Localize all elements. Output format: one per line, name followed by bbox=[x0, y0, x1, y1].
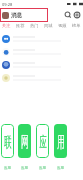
staticText: 榜单 bbox=[72, 23, 81, 28]
staticText: 视频 bbox=[58, 23, 67, 28]
staticText: 关注 bbox=[2, 23, 11, 28]
button[interactable]: Profile bbox=[73, 11, 81, 19]
staticText: 应用 bbox=[21, 166, 28, 170]
staticText: 同城 bbox=[44, 23, 53, 28]
staticText: 消息 bbox=[11, 12, 22, 19]
staticText: 网 bbox=[21, 132, 29, 150]
button[interactable] bbox=[0, 60, 83, 69]
button[interactable] bbox=[0, 73, 83, 82]
button[interactable] bbox=[0, 34, 83, 43]
staticText: 用 bbox=[57, 132, 65, 150]
staticText: 热门 bbox=[30, 23, 39, 28]
button[interactable]: 推荐 bbox=[15, 23, 26, 28]
button[interactable]: 消息 bbox=[0, 8, 48, 22]
staticText: 应用 bbox=[4, 166, 11, 170]
button[interactable]: 应 bbox=[36, 124, 49, 158]
button[interactable]: 榜单 bbox=[71, 23, 82, 28]
button[interactable]: 视频 bbox=[57, 23, 68, 28]
button[interactable] bbox=[0, 47, 83, 56]
button[interactable]: 用 bbox=[54, 124, 67, 158]
staticText: 联 bbox=[4, 132, 12, 150]
button[interactable]: 网 bbox=[18, 124, 31, 158]
button[interactable]: 关注 bbox=[1, 23, 12, 28]
staticText: 应 bbox=[39, 132, 47, 150]
button[interactable]: 同城 bbox=[43, 23, 54, 28]
staticText: 推荐 bbox=[16, 23, 25, 28]
button[interactable]: 联 bbox=[1, 124, 14, 158]
button[interactable]: 热门 bbox=[29, 23, 40, 28]
staticText: 09:28 bbox=[2, 2, 13, 7]
staticText: 应用 bbox=[57, 166, 64, 170]
button[interactable]: Search bbox=[64, 11, 72, 19]
staticText: 应用 bbox=[39, 166, 46, 170]
